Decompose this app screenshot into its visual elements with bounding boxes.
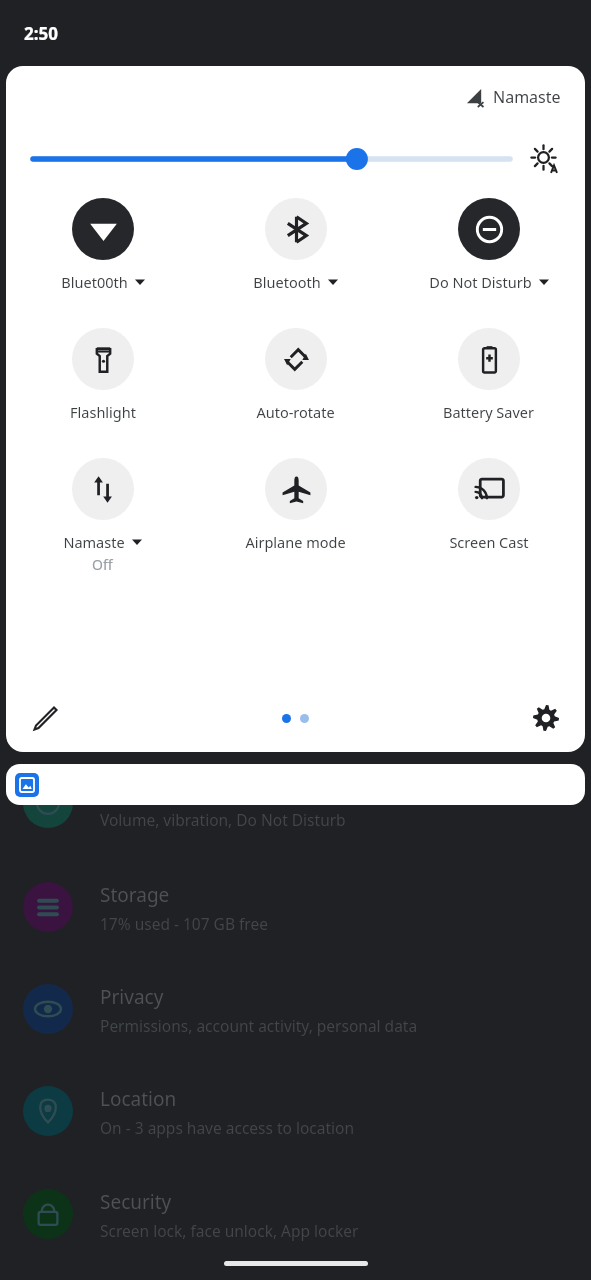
button[interactable]: Auto brightness (523, 137, 567, 181)
staticText: Volume, vibration, Do Not Disturb (100, 809, 346, 830)
staticText: Permissions, account activity, personal … (100, 1015, 418, 1036)
button[interactable]: Location (0, 1078, 591, 1170)
staticText: Namaste (493, 86, 561, 108)
staticText: Privacy (100, 984, 164, 1010)
staticText: Battery Saver (443, 402, 534, 422)
button[interactable]: Bluetooth (199, 198, 392, 292)
staticText: Storage (100, 882, 170, 908)
button[interactable]: Settings (523, 695, 569, 741)
button[interactable]: Do Not Disturb (392, 198, 585, 292)
staticText: Bluetooth (253, 272, 321, 292)
staticText: Off (92, 555, 113, 574)
button[interactable]: Security (0, 1181, 591, 1273)
staticText: Location (100, 1086, 177, 1112)
button[interactable]: Battery Saver (392, 328, 585, 422)
button[interactable]: Edit tiles (22, 695, 68, 741)
button[interactable] (33, 142, 510, 176)
button[interactable]: Screen Cast (392, 458, 585, 552)
staticText: Auto-rotate (256, 402, 335, 422)
button[interactable]: Auto-rotate (199, 328, 392, 422)
staticText: Screen Cast (449, 532, 529, 552)
button[interactable] (6, 764, 585, 805)
staticText: Screen lock, face unlock, App locker (100, 1220, 359, 1241)
staticText: Flashlight (70, 402, 136, 422)
staticText: 17% used - 107 GB free (100, 913, 268, 934)
staticText: Security (100, 1189, 172, 1215)
button[interactable]: Sound (0, 770, 591, 862)
staticText: Do Not Disturb (429, 272, 532, 292)
button[interactable]: Privacy (0, 976, 591, 1068)
button[interactable]: Airplane mode (199, 458, 392, 552)
staticText: On - 3 apps have access to location (100, 1117, 355, 1138)
staticText: Airplane mode (245, 532, 346, 552)
staticText: 2:50 (24, 22, 58, 45)
button[interactable]: Flashlight (6, 328, 199, 422)
staticText: Bluet00th (61, 272, 128, 292)
button[interactable]: Namaste (6, 458, 199, 574)
staticText: Namaste (63, 532, 125, 552)
button[interactable]: Bluet00th (6, 198, 199, 292)
button[interactable]: Storage (0, 874, 591, 966)
